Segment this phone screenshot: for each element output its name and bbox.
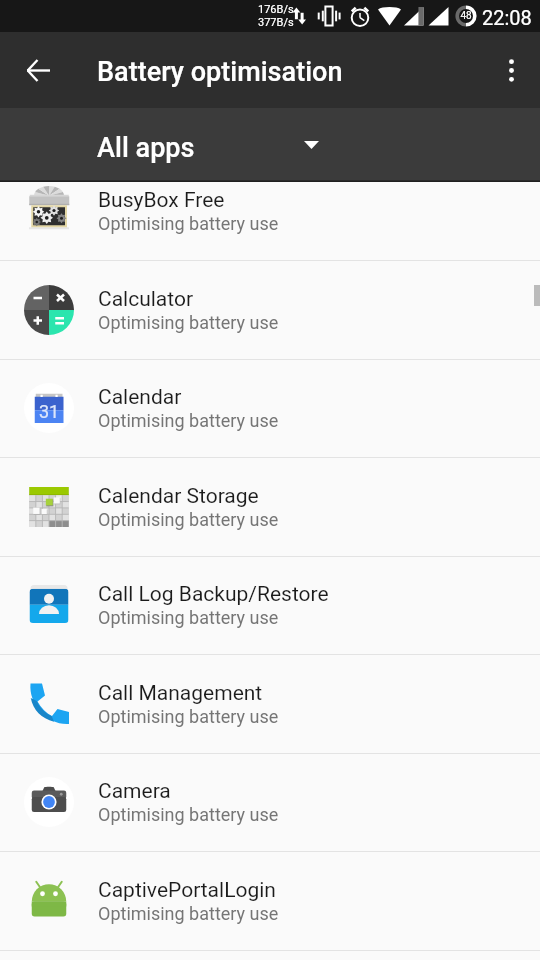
button[interactable]: Call Log Backup/Restore bbox=[0, 556, 540, 654]
staticText: Camera bbox=[98, 779, 171, 804]
staticText: Calculator bbox=[98, 287, 194, 312]
button[interactable]: 31 bbox=[0, 359, 540, 457]
staticText: 22:08 bbox=[482, 6, 532, 29]
button[interactable]: Call Management bbox=[0, 655, 540, 753]
staticText: Call Management bbox=[98, 681, 263, 706]
staticText: Optimising battery use bbox=[98, 410, 279, 431]
staticText: Optimising battery use bbox=[98, 804, 279, 825]
button[interactable]: Calculator bbox=[0, 261, 540, 359]
staticText: Optimising battery use bbox=[98, 903, 279, 924]
button[interactable]: CaptivePortalLogin bbox=[0, 852, 540, 950]
staticText: Optimising battery use bbox=[98, 312, 279, 333]
button[interactable]: More options bbox=[487, 46, 535, 94]
staticText: 31 bbox=[39, 401, 60, 422]
button[interactable]: All apps bbox=[0, 108, 540, 182]
staticText: All apps bbox=[97, 132, 195, 164]
staticText: Calendar bbox=[98, 385, 182, 410]
staticText: Optimising battery use bbox=[98, 607, 279, 628]
button[interactable]: Navigate up bbox=[14, 46, 62, 94]
staticText: Battery optimisation bbox=[97, 56, 343, 88]
staticText: 176B/s bbox=[258, 3, 294, 16]
staticText: Optimising battery use bbox=[98, 213, 279, 234]
staticText: Calendar Storage bbox=[98, 484, 259, 509]
button[interactable]: Camera bbox=[0, 753, 540, 851]
staticText: BusyBox Free bbox=[98, 188, 225, 213]
staticText: CaptivePortalLogin bbox=[98, 878, 276, 903]
staticText: Optimising battery use bbox=[98, 509, 279, 530]
button[interactable]: BusyBox Free bbox=[0, 182, 540, 260]
button[interactable]: Calendar Storage bbox=[0, 458, 540, 556]
staticText: Call Log Backup/Restore bbox=[98, 582, 329, 607]
staticText: Optimising battery use bbox=[98, 706, 279, 727]
staticText: 48 bbox=[458, 10, 474, 22]
staticText: 377B/s bbox=[258, 16, 294, 29]
